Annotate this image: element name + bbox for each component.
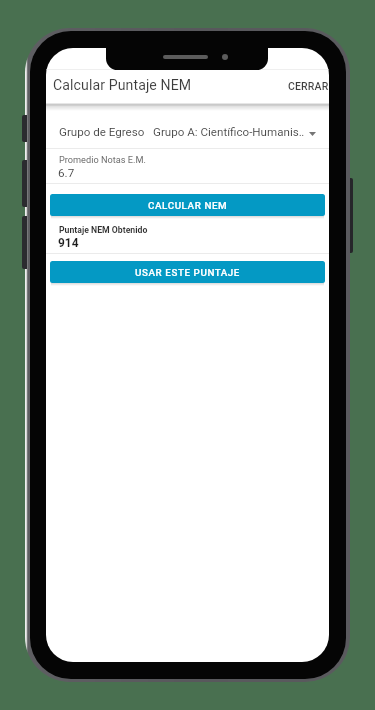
staticText: Grupo A: Científico-Humanis…	[153, 125, 304, 139]
button[interactable]: USAR ESTE PUNTAJE	[50, 261, 325, 283]
staticText: CERRAR	[288, 80, 329, 92]
staticText: USAR ESTE PUNTAJE	[135, 267, 240, 278]
staticText: Puntaje NEM Obtenido	[59, 225, 148, 235]
button[interactable]: CALCULAR NEM	[50, 194, 325, 216]
staticText: 6.7	[58, 166, 75, 180]
staticText: Calcular Puntaje NEM	[53, 77, 192, 94]
button[interactable]	[46, 105, 329, 149]
button[interactable]: Cerrar	[282, 74, 329, 96]
staticText: Promedio Notas E.M.	[59, 154, 146, 165]
button[interactable]	[46, 150, 329, 184]
staticText: CALCULAR NEM	[148, 200, 228, 211]
staticText: Grupo de Egreso	[59, 125, 145, 139]
staticText: 914	[58, 236, 79, 250]
